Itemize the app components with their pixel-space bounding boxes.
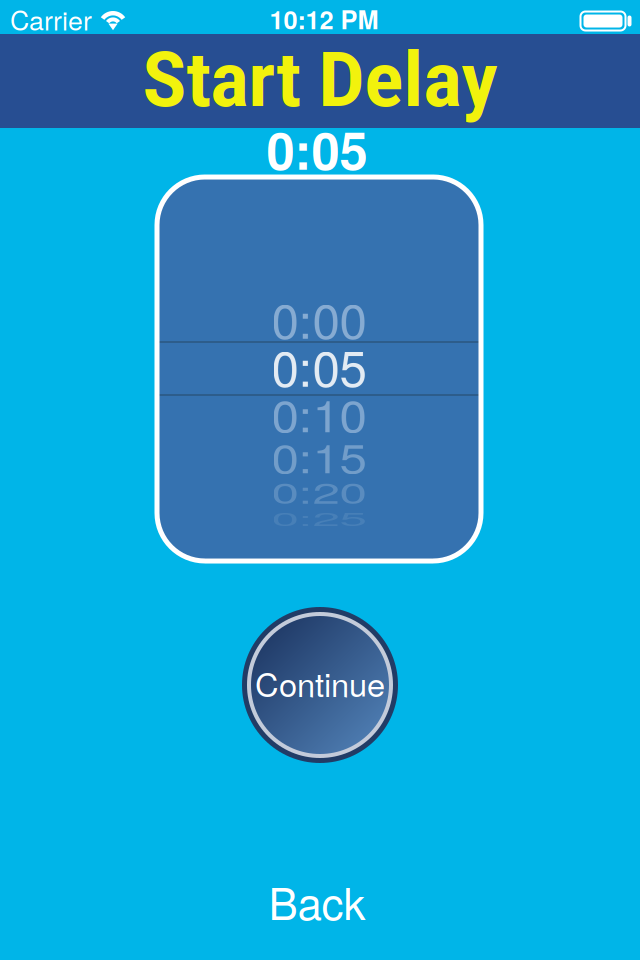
staticText: Continue	[255, 660, 385, 706]
staticText: 0:05	[266, 113, 367, 185]
staticText: 0:15	[271, 421, 366, 491]
staticText: 0:10	[271, 378, 366, 448]
button[interactable]: Start delay picker	[157, 177, 481, 561]
button[interactable]: Continue	[242, 607, 398, 763]
staticText: Back	[268, 869, 365, 932]
button[interactable]: Back	[237, 868, 397, 934]
staticText: 0:20	[271, 456, 366, 526]
staticText: 10:12 PM	[269, 1, 378, 37]
staticText: 0:05	[271, 330, 366, 401]
staticText: Start Delay	[142, 35, 497, 125]
staticText: 0:25	[271, 483, 366, 553]
staticText: 0:00	[271, 283, 366, 353]
staticText: Carrier	[10, 0, 92, 38]
